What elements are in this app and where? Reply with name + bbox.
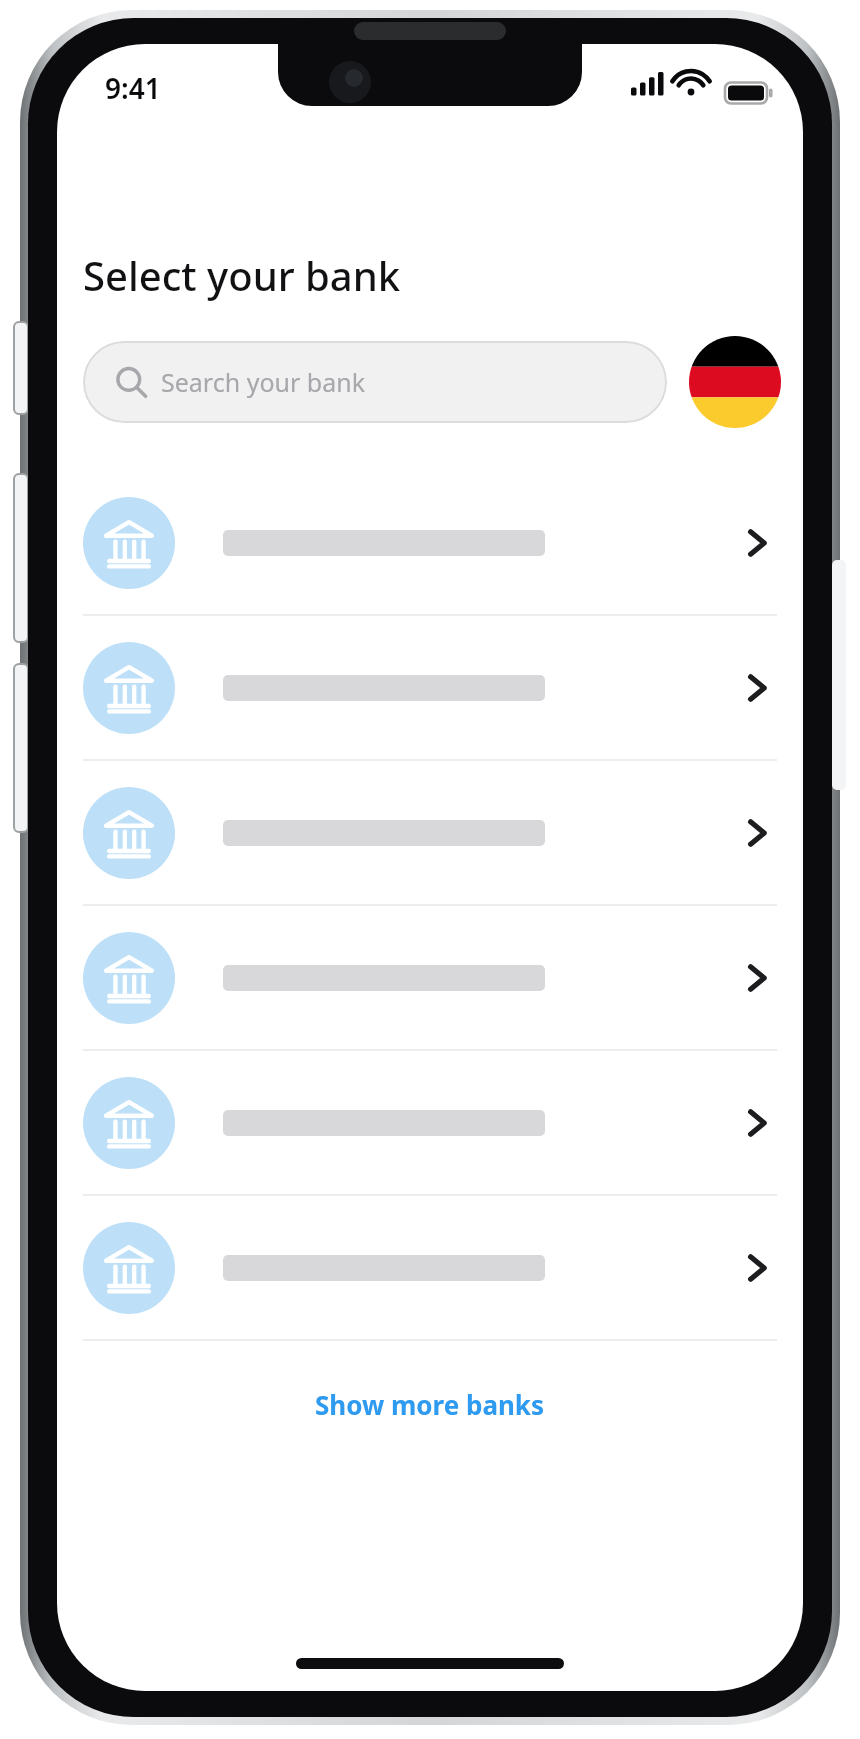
button[interactable] xyxy=(57,761,803,904)
button[interactable]: Select country: Germany xyxy=(689,336,781,428)
button[interactable] xyxy=(57,471,803,614)
button[interactable]: Show more banks xyxy=(57,1377,803,1432)
staticText: Search your bank xyxy=(161,365,365,399)
staticText: 9:41 xyxy=(105,69,161,107)
staticText: Show more banks xyxy=(315,1387,545,1422)
staticText: Select your bank xyxy=(83,248,401,302)
button[interactable] xyxy=(57,1051,803,1194)
button[interactable] xyxy=(57,1196,803,1339)
button[interactable] xyxy=(57,616,803,759)
button[interactable]: Search your bank xyxy=(83,341,667,423)
button[interactable] xyxy=(57,906,803,1049)
